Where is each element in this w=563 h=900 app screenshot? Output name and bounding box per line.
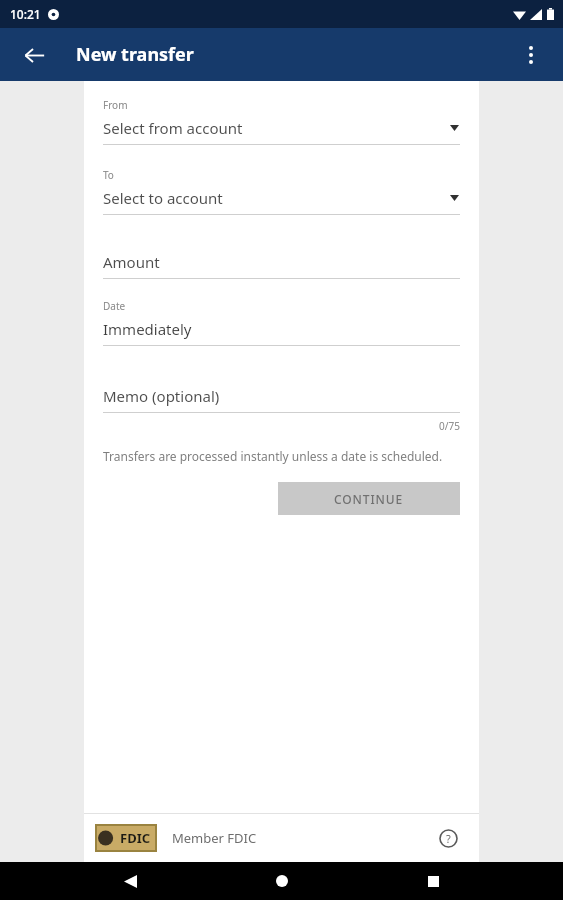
- staticText: Select from account: [103, 118, 450, 138]
- button[interactable]: Recent apps: [411, 862, 455, 900]
- staticText: CONTINUE: [334, 491, 404, 507]
- staticText: New transfer: [76, 42, 194, 67]
- staticText: Member FDIC: [172, 829, 257, 847]
- staticText: FDIC: [120, 829, 151, 847]
- button[interactable]: More options: [510, 34, 552, 76]
- staticText: To: [103, 168, 114, 182]
- button[interactable]: Back: [108, 862, 152, 900]
- staticText: Select to account: [103, 188, 450, 208]
- button[interactable]: Home: [260, 862, 304, 900]
- button[interactable]: CONTINUE: [278, 482, 460, 515]
- staticText: Transfers are processed instantly unless…: [103, 448, 443, 464]
- staticText: From: [103, 98, 128, 112]
- button[interactable]: Memo (optional): [103, 386, 460, 413]
- button[interactable]: From: [103, 98, 460, 145]
- staticText: ?: [446, 831, 451, 846]
- button[interactable]: Amount: [103, 252, 460, 279]
- staticText: Immediately: [103, 319, 460, 339]
- staticText: Amount: [103, 252, 160, 272]
- button[interactable]: To: [103, 168, 460, 215]
- button[interactable]: Help: [431, 821, 465, 855]
- button[interactable]: FDIC: [96, 825, 156, 851]
- staticText: 10:21: [10, 6, 41, 22]
- staticText: Memo (optional): [103, 386, 220, 406]
- button[interactable]: Date: [103, 299, 460, 346]
- staticText: Date: [103, 299, 126, 313]
- staticText: 0/75: [103, 419, 460, 433]
- button[interactable]: Back: [13, 34, 55, 76]
